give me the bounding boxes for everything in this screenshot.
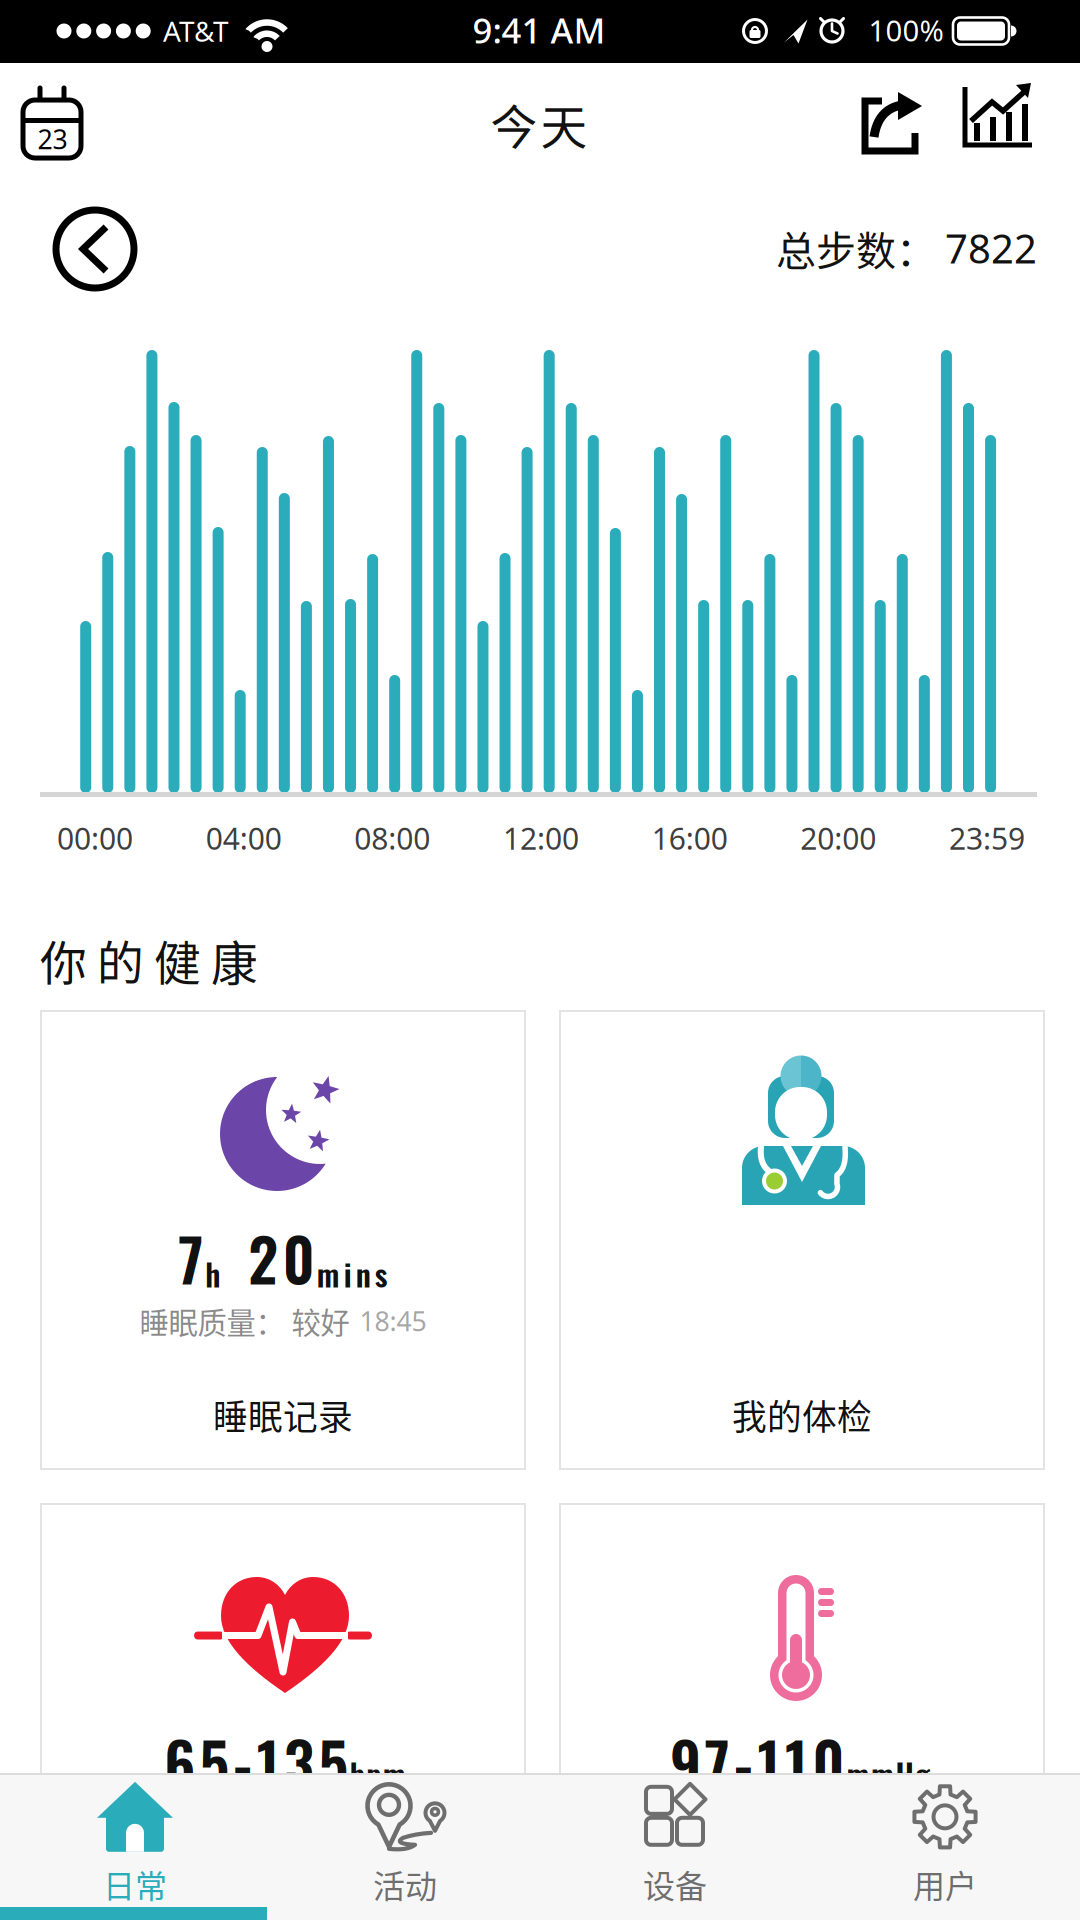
button[interactable]: 65-135	[40, 1503, 526, 1920]
staticText: 20	[248, 1214, 315, 1301]
button[interactable]: Calendar	[16, 84, 88, 162]
staticText: 16:00	[652, 818, 728, 858]
staticText: bpm	[350, 1751, 406, 1796]
button[interactable]: 7	[40, 1010, 526, 1470]
button[interactable]: 活动	[270, 1775, 540, 1913]
staticText: AT&T	[163, 12, 229, 50]
staticText: 7	[178, 1214, 203, 1301]
staticText: 我的体检	[732, 1390, 872, 1440]
button[interactable]: 设备	[540, 1775, 810, 1913]
staticText: 97-110	[670, 1718, 844, 1805]
staticText: 04:00	[206, 818, 282, 858]
button[interactable]: 日常	[0, 1775, 270, 1913]
staticText: 23	[37, 121, 67, 157]
button[interactable]: Statistics	[960, 83, 1034, 151]
staticText: 18:45	[359, 1303, 426, 1339]
staticText: 12:00	[503, 818, 579, 858]
button[interactable]: Back	[50, 204, 140, 294]
button[interactable]: Share	[858, 89, 930, 155]
staticText: 65-135	[164, 1718, 348, 1805]
staticText: 9:41 AM	[472, 6, 605, 54]
staticText: h	[205, 1251, 220, 1296]
button[interactable]: 用户	[810, 1775, 1080, 1913]
staticText: 总步数：	[776, 219, 945, 277]
staticText: 08:00	[354, 818, 430, 858]
staticText: 20:00	[800, 818, 876, 858]
staticText: 设备	[643, 1861, 707, 1907]
staticText: 23:59	[949, 818, 1025, 858]
staticText: 日常	[103, 1861, 167, 1907]
staticText: 睡眠质量： 较好	[139, 1300, 349, 1342]
staticText: 用户	[913, 1861, 977, 1907]
staticText: 100%	[868, 10, 943, 50]
staticText: 00:00	[57, 818, 133, 858]
staticText: 你 的 健 康	[40, 926, 258, 994]
staticText: 活动	[373, 1861, 437, 1907]
button[interactable]: 我的体检	[559, 1010, 1045, 1470]
staticText: 睡眠记录	[213, 1390, 353, 1440]
staticText: mins	[317, 1251, 388, 1296]
staticText: 7822	[945, 221, 1037, 275]
staticText: 今天	[490, 90, 587, 158]
button[interactable]: 97-110	[559, 1503, 1045, 1920]
staticText: mmHg	[846, 1751, 930, 1796]
